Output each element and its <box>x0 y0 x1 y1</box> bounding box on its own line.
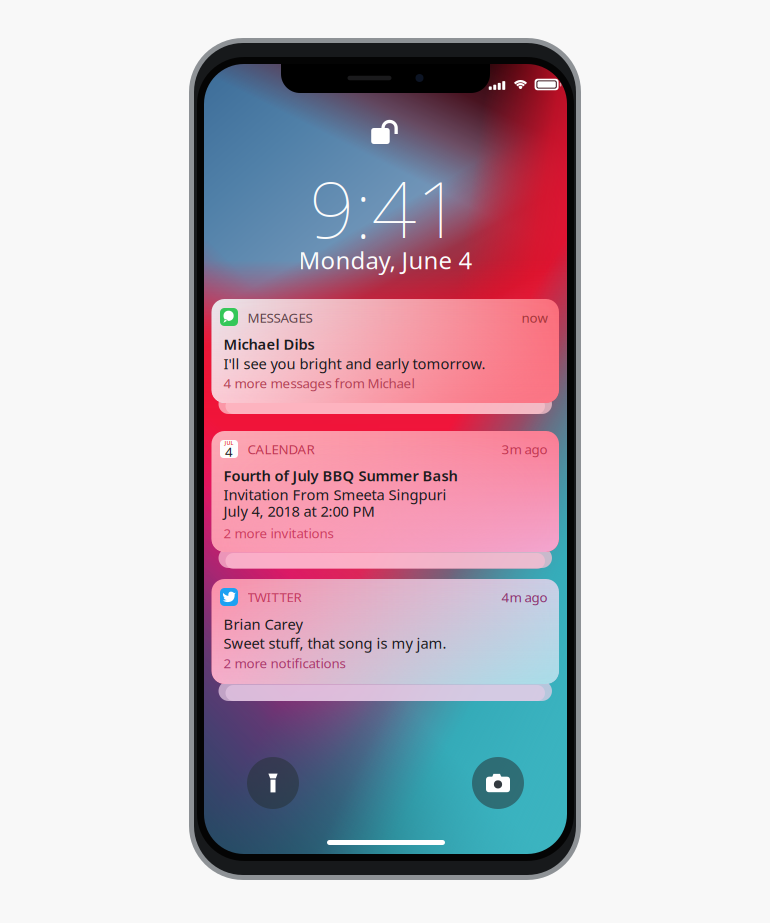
staticText: July 4, 2018 at 2:00 PM <box>223 501 374 521</box>
staticText: 4m ago <box>501 588 547 606</box>
staticText: JUL <box>224 439 233 447</box>
button[interactable]: TWITTER <box>211 579 559 684</box>
staticText: Sweet stuff, that song is my jam. <box>223 633 446 653</box>
staticText: Michael Dibs <box>223 334 314 354</box>
staticText: now <box>521 309 547 326</box>
staticText: Fourth of July BBQ Summer Bash <box>223 466 457 485</box>
staticText: 4 <box>225 443 233 460</box>
staticText: 4 more messages from Michael <box>223 374 414 392</box>
staticText: Monday, June 4 <box>298 244 472 276</box>
staticText: 2 more invitations <box>223 524 333 542</box>
button[interactable]: JUL <box>211 431 559 552</box>
staticText: TWITTER <box>247 588 301 606</box>
button[interactable]: MESSAGES <box>211 299 559 403</box>
staticText: I'll see you bright and early tomorrow. <box>223 354 485 373</box>
staticText: CALENDAR <box>247 440 314 458</box>
staticText: Invitation From Smeeta Singpuri <box>223 485 446 504</box>
button[interactable]: Flashlight <box>247 757 299 809</box>
staticText: 3m ago <box>501 440 547 458</box>
button[interactable]: Camera <box>472 757 524 809</box>
staticText: MESSAGES <box>247 309 312 326</box>
staticText: Brian Carey <box>223 614 302 634</box>
staticText: 2 more notifications <box>223 654 345 672</box>
staticText: 9:41 <box>309 155 461 260</box>
